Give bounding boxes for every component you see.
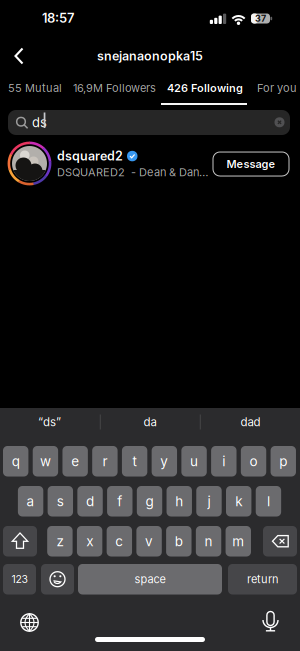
staticText: For you [257, 81, 297, 95]
button[interactable]: ds [8, 110, 290, 135]
button[interactable]: Shift [3, 526, 37, 556]
staticText: w [40, 453, 51, 469]
button[interactable]: o [241, 446, 266, 476]
staticText: 55 Mutual [8, 81, 62, 95]
button[interactable]: i [211, 446, 236, 476]
staticText: f [117, 493, 122, 509]
button[interactable]: n [196, 526, 221, 556]
staticText: o [249, 453, 257, 469]
staticText: k [235, 493, 242, 509]
button[interactable]: Message [213, 152, 289, 176]
staticText: z [56, 533, 63, 549]
button[interactable]: da [101, 410, 199, 434]
staticText: h [175, 493, 183, 509]
staticText: u [190, 453, 198, 469]
staticText: snejanaonopka15 [97, 48, 203, 63]
staticText: y [160, 453, 168, 469]
staticText: a [27, 493, 35, 509]
staticText: ds [32, 115, 47, 130]
staticText: 37 [255, 13, 266, 24]
button[interactable]: Clear search text [274, 117, 284, 127]
staticText: return [247, 573, 278, 586]
button[interactable]: space [78, 564, 222, 594]
button[interactable]: e [62, 446, 88, 476]
button[interactable]: 16,9M Followers [73, 73, 168, 103]
button[interactable]: v [136, 526, 162, 556]
staticText: space [134, 573, 165, 586]
staticText: n [205, 533, 213, 549]
button[interactable]: 55 Mutual [8, 73, 78, 103]
staticText: x [86, 533, 93, 549]
staticText: da [143, 415, 156, 429]
staticText: b [175, 533, 183, 549]
button[interactable]: Delete [263, 526, 297, 556]
button[interactable]: s [48, 486, 73, 516]
staticText: m [232, 533, 244, 549]
staticText: 426 Following [167, 81, 243, 95]
staticText: j [207, 493, 210, 509]
button[interactable]: a [18, 486, 43, 516]
staticText: c [115, 533, 123, 549]
button[interactable]: c [107, 526, 132, 556]
button[interactable]: u [181, 446, 207, 476]
button[interactable]: For you [257, 73, 300, 103]
button[interactable]: f [107, 486, 132, 516]
button[interactable]: Back [8, 44, 32, 68]
button[interactable]: Emoji [41, 564, 74, 594]
staticText: DSQUARED2 - Dean & Dan… [57, 165, 209, 179]
button[interactable]: Switch keyboard [18, 611, 40, 633]
staticText: 16,9M Followers [73, 81, 156, 95]
staticText: s [57, 493, 64, 509]
button[interactable]: w [33, 446, 58, 476]
button[interactable]: b [166, 526, 191, 556]
button[interactable]: x [77, 526, 102, 556]
button[interactable]: j [196, 486, 222, 516]
button[interactable]: m [226, 526, 251, 556]
staticText: Message [226, 157, 275, 171]
staticText: “ds” [38, 415, 61, 429]
button[interactable]: t [122, 446, 147, 476]
staticText: t [133, 453, 137, 469]
button[interactable]: k [226, 486, 251, 516]
button[interactable]: z [47, 526, 73, 556]
button[interactable]: 426 Following [167, 73, 262, 103]
staticText: 18:57 [42, 10, 74, 26]
button[interactable]: Dictation [260, 610, 280, 634]
staticText: l [267, 493, 270, 509]
button[interactable]: h [167, 486, 192, 516]
button[interactable]: “ds” [0, 410, 99, 434]
staticText: g [145, 493, 153, 509]
staticText: q [12, 453, 20, 469]
staticText: r [102, 453, 107, 469]
button[interactable]: 123 [3, 564, 36, 594]
button[interactable]: p [271, 446, 296, 476]
button[interactable]: return [228, 564, 297, 594]
button[interactable]: d [77, 486, 103, 516]
button[interactable]: dsquared2 [7, 141, 209, 186]
button[interactable]: r [92, 446, 118, 476]
staticText: e [71, 453, 79, 469]
staticText: i [222, 453, 225, 469]
button[interactable]: l [256, 486, 281, 516]
button[interactable]: dad [201, 410, 300, 434]
staticText: p [279, 453, 287, 469]
button[interactable]: q [3, 446, 28, 476]
button[interactable]: g [137, 486, 162, 516]
staticText: dad [240, 415, 260, 429]
staticText: dsquared2 [57, 148, 123, 164]
staticText: 123 [11, 573, 27, 586]
button[interactable]: y [152, 446, 177, 476]
staticText: v [145, 533, 153, 549]
staticText: d [86, 493, 94, 509]
